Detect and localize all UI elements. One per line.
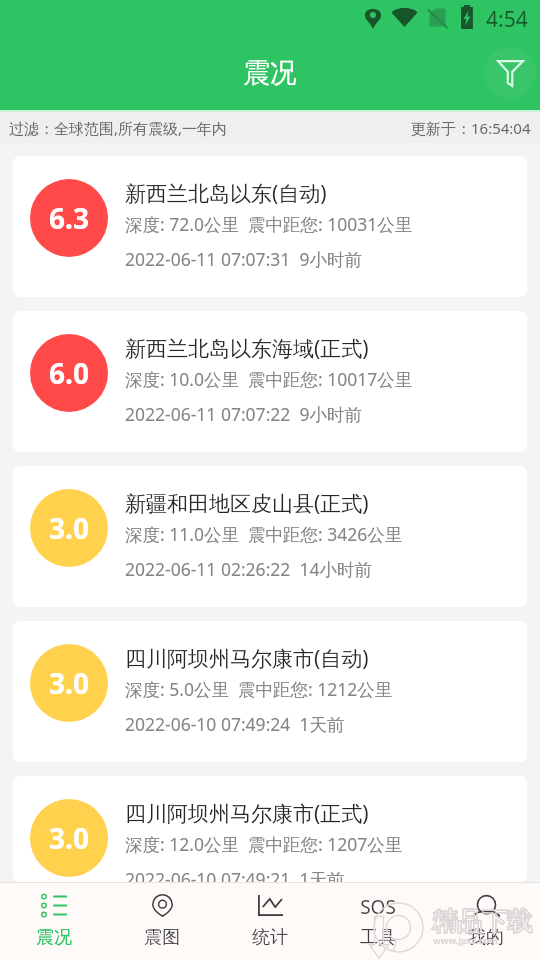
staticText: www.jpxz.com <box>433 934 498 946</box>
staticText: 震况 <box>36 926 72 949</box>
button[interactable]: SOS <box>324 882 432 960</box>
button[interactable]: 震图 <box>108 882 216 960</box>
button[interactable]: 6.3 <box>13 156 527 297</box>
staticText: 3.0 <box>49 664 89 702</box>
staticText: 2022-06-11 07:07:31 9小时前 <box>125 247 362 271</box>
button[interactable]: Filter <box>484 47 536 99</box>
button[interactable]: 3.0 <box>13 621 527 762</box>
staticText: SOS <box>360 894 396 917</box>
staticText: 震况 <box>243 56 297 90</box>
staticText: 深度: 10.0公里 震中距您: 10017公里 <box>125 367 413 391</box>
staticText: 深度: 11.0公里 震中距您: 3426公里 <box>125 522 403 546</box>
staticText: 新疆和田地区皮山县(正式) <box>125 489 369 518</box>
staticText: 6.3 <box>49 199 89 237</box>
staticText: 更新于：16:54:04 <box>411 118 531 138</box>
button[interactable]: 6.0 <box>13 311 527 452</box>
button[interactable]: 3.0 <box>13 466 527 607</box>
staticText: 深度: 12.0公里 震中距您: 1207公里 <box>125 832 403 856</box>
staticText: 深度: 5.0公里 震中距您: 1212公里 <box>125 677 393 701</box>
staticText: 四川阿坝州马尔康市(正式) <box>125 799 369 828</box>
button[interactable]: 我的 <box>432 882 540 960</box>
staticText: 工具 <box>360 926 396 949</box>
staticText: 6.0 <box>49 354 89 392</box>
staticText: 2022-06-11 02:26:22 14小时前 <box>125 557 372 581</box>
staticText: 深度: 72.0公里 震中距您: 10031公里 <box>125 212 413 236</box>
staticText: 统计 <box>252 926 288 949</box>
staticText: 精品下载 <box>432 906 532 937</box>
staticText: 震图 <box>144 926 180 949</box>
staticText: 新西兰北岛以东(自动) <box>125 179 327 208</box>
staticText: 四川阿坝州马尔康市(自动) <box>125 644 369 673</box>
staticText: 2022-06-10 07:49:24 1天前 <box>125 712 345 736</box>
staticText: 新西兰北岛以东海域(正式) <box>125 334 369 363</box>
staticText: 2022-06-11 07:07:22 9小时前 <box>125 402 362 426</box>
staticText: 4:54 <box>486 5 528 34</box>
staticText: 2022-06-10 07:49:21 1天前 <box>125 867 345 882</box>
staticText: 3.0 <box>49 509 89 547</box>
staticText: 过滤：全球范围,所有震级,一年内 <box>9 118 228 138</box>
button[interactable]: 3.0 <box>13 776 527 882</box>
staticText: 3.0 <box>49 819 89 857</box>
button[interactable]: 统计 <box>216 882 324 960</box>
button[interactable]: 震况 <box>0 882 108 960</box>
staticText: 我的 <box>468 926 504 949</box>
